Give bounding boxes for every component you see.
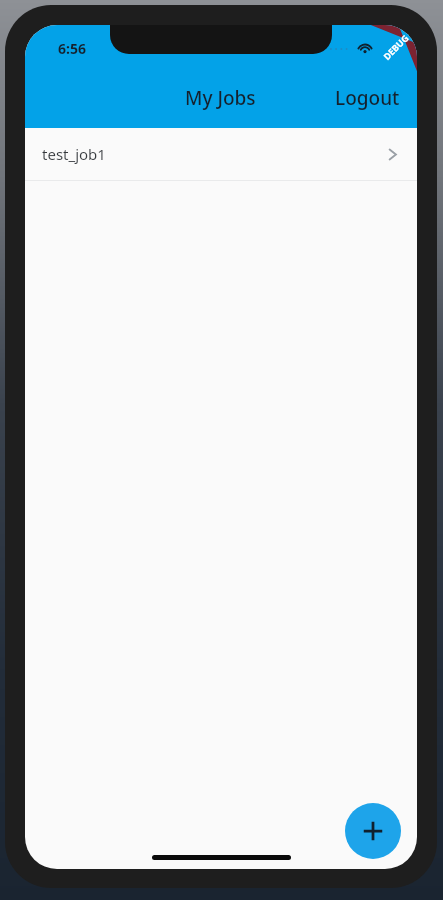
staticText: test_job1	[42, 144, 106, 164]
staticText: Logout	[335, 85, 400, 111]
button[interactable]: Logout	[327, 78, 408, 118]
staticText: DEBUG	[380, 32, 411, 62]
button[interactable]: test_job1	[25, 128, 417, 181]
staticText: 6:56	[58, 39, 86, 58]
staticText: My Jobs	[185, 85, 256, 111]
button[interactable]: Add job	[345, 803, 401, 859]
